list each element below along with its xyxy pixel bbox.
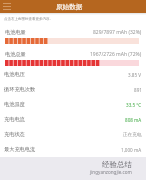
staticText: 原始数据 [56, 3, 83, 11]
staticText: 点击右上角图标查看更多内容。 [4, 17, 53, 21]
button[interactable]: 循环充电次数 [0, 82, 146, 97]
staticText: 3.85 V [128, 72, 142, 78]
staticText: 电池电量 [5, 29, 26, 36]
staticText: 33.5 °C [126, 102, 142, 108]
button[interactable]: 最大充电电流 [0, 142, 146, 157]
staticText: 808 mA [125, 117, 142, 123]
staticText: jingyanzongjie.com [90, 169, 132, 175]
staticText: 充电状态 [4, 131, 25, 138]
staticText: 充电电流 [4, 116, 25, 123]
staticText: 1967/2726 mAh (72%) [90, 51, 142, 58]
button[interactable]: 电池总量 [0, 51, 146, 66]
staticText: 循环充电次数 [4, 86, 36, 93]
staticText: 电池电压 [4, 71, 25, 78]
staticText: 891 [134, 87, 142, 93]
button[interactable]: 电池电压 [0, 67, 146, 82]
button[interactable]: 充电状态 [0, 127, 146, 142]
staticText: 电池温度 [4, 101, 25, 108]
button[interactable]: 充电电流 [0, 112, 146, 127]
staticText: 1,000 mA [121, 147, 142, 153]
button[interactable]: 电池温度 [0, 97, 146, 112]
button[interactable]: Menu [0, 0, 14, 13]
staticText: 829/7897 mAh (32%) [93, 29, 142, 36]
staticText: 正在充电 [123, 132, 142, 138]
staticText: 电池总量 [5, 51, 26, 58]
staticText: 经验总结 [102, 160, 132, 169]
button[interactable]: 电池电量 [0, 29, 146, 44]
staticText: 最大充电电流 [4, 146, 36, 153]
